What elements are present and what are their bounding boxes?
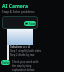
staticText: the step by step (12, 64, 32, 68)
staticText: Step 1 simplify both sides (10, 49, 42, 53)
staticText: Solution: x = 4 (10, 45, 30, 49)
staticText: Step 2 divide by two (10, 53, 35, 57)
staticText: Snap & Solve problems (2, 10, 35, 14)
staticText: Check your work with (12, 60, 39, 64)
staticText: AI Camera (2, 3, 28, 10)
staticText: Scan (29, 22, 36, 26)
button[interactable]: Solve (1, 60, 10, 65)
staticText: Solve (2, 61, 10, 65)
staticText: explanation below (12, 68, 35, 72)
button[interactable]: Scan (2, 16, 38, 29)
